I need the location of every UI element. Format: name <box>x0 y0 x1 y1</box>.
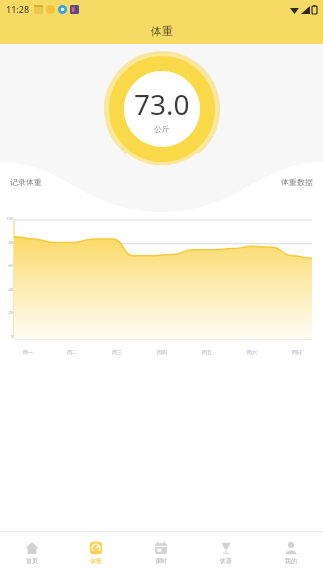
staticText: 周三 <box>112 349 122 355</box>
button[interactable]: 课时 <box>128 532 193 574</box>
staticText: 100 <box>0 216 13 221</box>
button[interactable]: 体重数据 <box>271 172 323 192</box>
staticText: 首页 <box>26 557 38 565</box>
staticText: 11:28 <box>6 3 30 15</box>
staticText: 体重数据 <box>281 177 313 187</box>
staticText: 80 <box>0 240 13 245</box>
staticText: 体重 <box>151 24 173 38</box>
staticText: 周一 <box>23 349 33 355</box>
staticText: 73.0 <box>134 85 190 123</box>
staticText: 课时 <box>155 557 167 565</box>
staticText: 记录体重 <box>10 177 42 187</box>
staticText: 我的 <box>285 557 297 565</box>
staticText: 周六 <box>247 349 257 355</box>
staticText: 0 <box>0 334 13 339</box>
staticText: 周二 <box>67 349 77 355</box>
staticText: 周五 <box>202 349 212 355</box>
button[interactable]: 记录体重 <box>0 172 52 192</box>
staticText: 饮茶 <box>220 557 232 565</box>
button[interactable]: 首页 <box>0 532 64 574</box>
staticText: 周日 <box>292 349 302 355</box>
button[interactable]: 饮茶 <box>193 532 258 574</box>
button[interactable]: 我的 <box>258 532 323 574</box>
staticText: 60 <box>0 263 13 268</box>
staticText: 40 <box>0 287 13 292</box>
staticText: 周四 <box>157 349 167 355</box>
staticText: 体重 <box>90 557 102 565</box>
staticText: 20 <box>0 310 13 315</box>
button[interactable]: 体重 <box>64 532 128 574</box>
staticText: 公斤 <box>154 124 170 134</box>
